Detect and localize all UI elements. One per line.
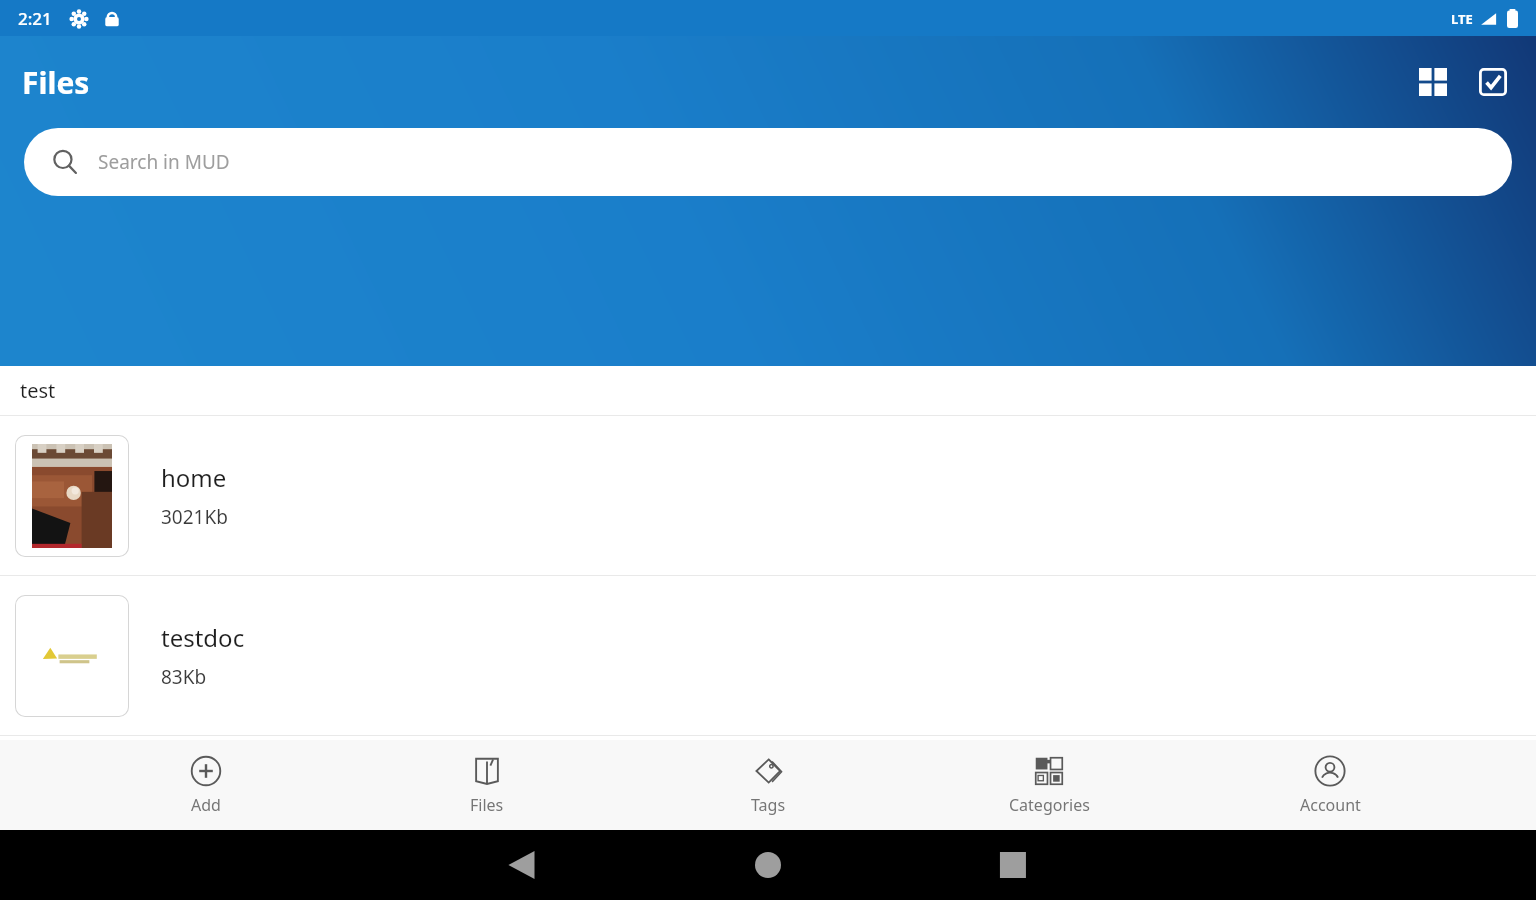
staticText: Files <box>470 794 504 816</box>
button[interactable]: home <box>0 416 1536 575</box>
staticText: Categories <box>1009 794 1090 816</box>
button[interactable]: Categories <box>974 748 1124 822</box>
staticText: Files <box>22 62 90 103</box>
staticText: Account <box>1300 794 1361 816</box>
button[interactable]: Search in MUD <box>24 128 1512 196</box>
staticText: LTE <box>1451 10 1473 28</box>
staticText: Search in MUD <box>98 149 230 175</box>
staticText: Tags <box>751 794 786 816</box>
button[interactable]: Add <box>131 748 281 822</box>
staticText: 3021Kb <box>161 504 228 530</box>
button[interactable]: Files <box>412 748 562 822</box>
staticText: Add <box>191 794 221 816</box>
staticText: 83Kb <box>161 664 207 690</box>
button[interactable]: Account <box>1255 748 1405 822</box>
staticText: test <box>20 377 56 404</box>
button[interactable]: Tags <box>693 748 843 822</box>
button[interactable]: Grid view <box>1410 59 1456 105</box>
staticText: home <box>161 461 227 494</box>
button[interactable]: testdoc <box>0 576 1536 735</box>
staticText: testdoc <box>161 621 245 654</box>
button[interactable]: Select <box>1470 59 1516 105</box>
staticText: 2:21 <box>18 7 52 30</box>
